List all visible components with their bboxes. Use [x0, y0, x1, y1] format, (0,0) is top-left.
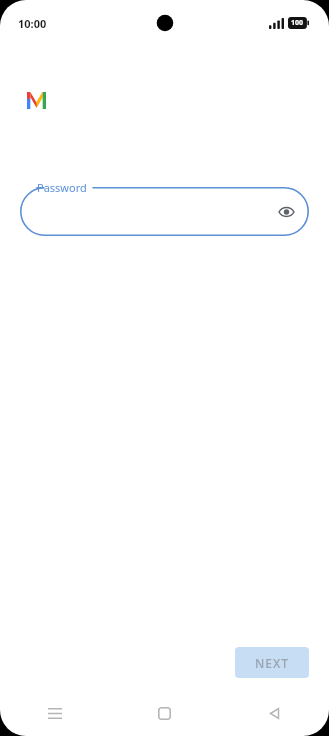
- button[interactable]: Recents: [0, 690, 109, 736]
- staticText: 100: [291, 18, 304, 28]
- staticText: 10:00: [18, 16, 47, 31]
- button[interactable]: NEXT: [235, 647, 309, 678]
- button[interactable]: Show password: [273, 199, 299, 225]
- button[interactable]: Back: [219, 690, 329, 736]
- button[interactable]: Home: [109, 690, 219, 736]
- staticText: NEXT: [255, 655, 290, 671]
- staticText: Password: [37, 180, 87, 195]
- button[interactable]: Password: [20, 187, 309, 236]
